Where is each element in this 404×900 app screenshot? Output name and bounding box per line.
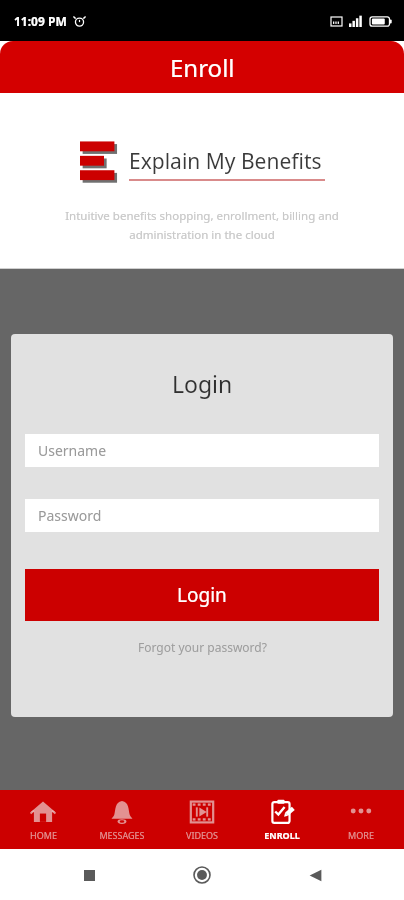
other: Messages (109, 799, 135, 825)
staticText: Forgot your password? (138, 639, 267, 655)
staticText: administration in the cloud (129, 227, 275, 243)
staticText: MORE (348, 829, 374, 841)
staticText: 11:09 PM (14, 13, 67, 29)
staticText: Username (38, 441, 107, 460)
button[interactable]: Recents (65, 851, 113, 899)
button[interactable]: Messages (85, 795, 159, 845)
staticText: Password (38, 506, 102, 525)
button[interactable]: More (324, 795, 398, 845)
staticText: Enroll (170, 51, 235, 84)
button[interactable]: Password (25, 499, 379, 532)
button[interactable]: Home (178, 851, 226, 899)
staticText: HOME (30, 829, 57, 841)
staticText: Login (177, 582, 227, 608)
button[interactable]: Login (25, 569, 379, 621)
staticText: Intuitive benefits shopping, enrollment,… (65, 208, 339, 224)
button[interactable]: Forgot your password? (25, 639, 379, 655)
button[interactable]: Enroll (245, 795, 319, 845)
button[interactable]: Home (6, 795, 80, 845)
button[interactable]: Videos (165, 795, 239, 845)
other: More (348, 799, 374, 825)
button[interactable]: Back (291, 851, 339, 899)
button[interactable]: Username (25, 434, 379, 467)
staticText: ENROLL (264, 829, 300, 841)
other: Videos (189, 799, 215, 825)
staticText: MESSAGES (99, 829, 145, 841)
other: Home (30, 799, 56, 825)
other: Enroll (269, 799, 295, 825)
staticText: Explain My Benefits (129, 147, 322, 176)
staticText: VIDEOS (186, 829, 218, 841)
staticText: Login (172, 368, 233, 399)
